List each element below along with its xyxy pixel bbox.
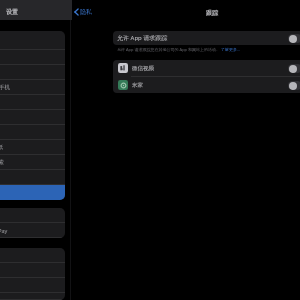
button[interactable]: 墙纸 [0,140,65,155]
button[interactable]: 搜索 [0,155,65,170]
staticText: 设置 [6,8,18,16]
button[interactable]: 允许 App 请求跟踪 [113,31,300,45]
button[interactable]: 开关 [288,34,300,43]
button[interactable]: 面容与密码 [0,170,65,185]
staticText: 跟踪 [206,9,218,17]
button[interactable]: 隐私与安全性 [0,185,65,200]
button[interactable]: 开关 [288,81,300,90]
button[interactable]: 开关 [288,64,300,73]
staticText: 米家 [132,82,143,89]
staticText: 钱包与 Apple Pay [0,227,8,235]
button[interactable]: 通用 [0,110,65,125]
button[interactable]: 我的手机 [0,80,65,95]
button[interactable]: 蓝牙 [0,65,65,80]
button[interactable]: 了解更多… [221,47,241,52]
button[interactable]: 电池 [0,95,65,110]
staticText: 搜索 [0,159,4,166]
button[interactable]: 邮件 [0,263,65,278]
button[interactable]: 通讯录 [0,278,65,293]
button[interactable]: 返回 隐私 [73,6,93,18]
button[interactable]: 密码 [0,248,65,263]
button[interactable]: 无线局域网 [0,50,65,65]
button[interactable]: 微信视频 [113,60,300,76]
staticText: 墙纸 [0,144,3,151]
button[interactable]: 日历 [0,293,65,300]
button[interactable]: 钱包与 Apple Pay [0,223,65,238]
staticText: 微信视频 [132,65,154,72]
button[interactable]: 辅助功能 [0,125,65,140]
staticText: 隐私 [80,8,92,16]
staticText: 我的手机 [0,84,10,91]
button[interactable]: App Store [0,208,65,223]
button[interactable]: 飞行模式 [0,35,65,50]
staticText: 允许 App 请求跟踪 [117,34,168,42]
button[interactable]: 米家 [113,77,300,93]
staticText: 允许 App 请求跟踪您在其他公司的 App 和网站上的活动。 [117,47,221,52]
